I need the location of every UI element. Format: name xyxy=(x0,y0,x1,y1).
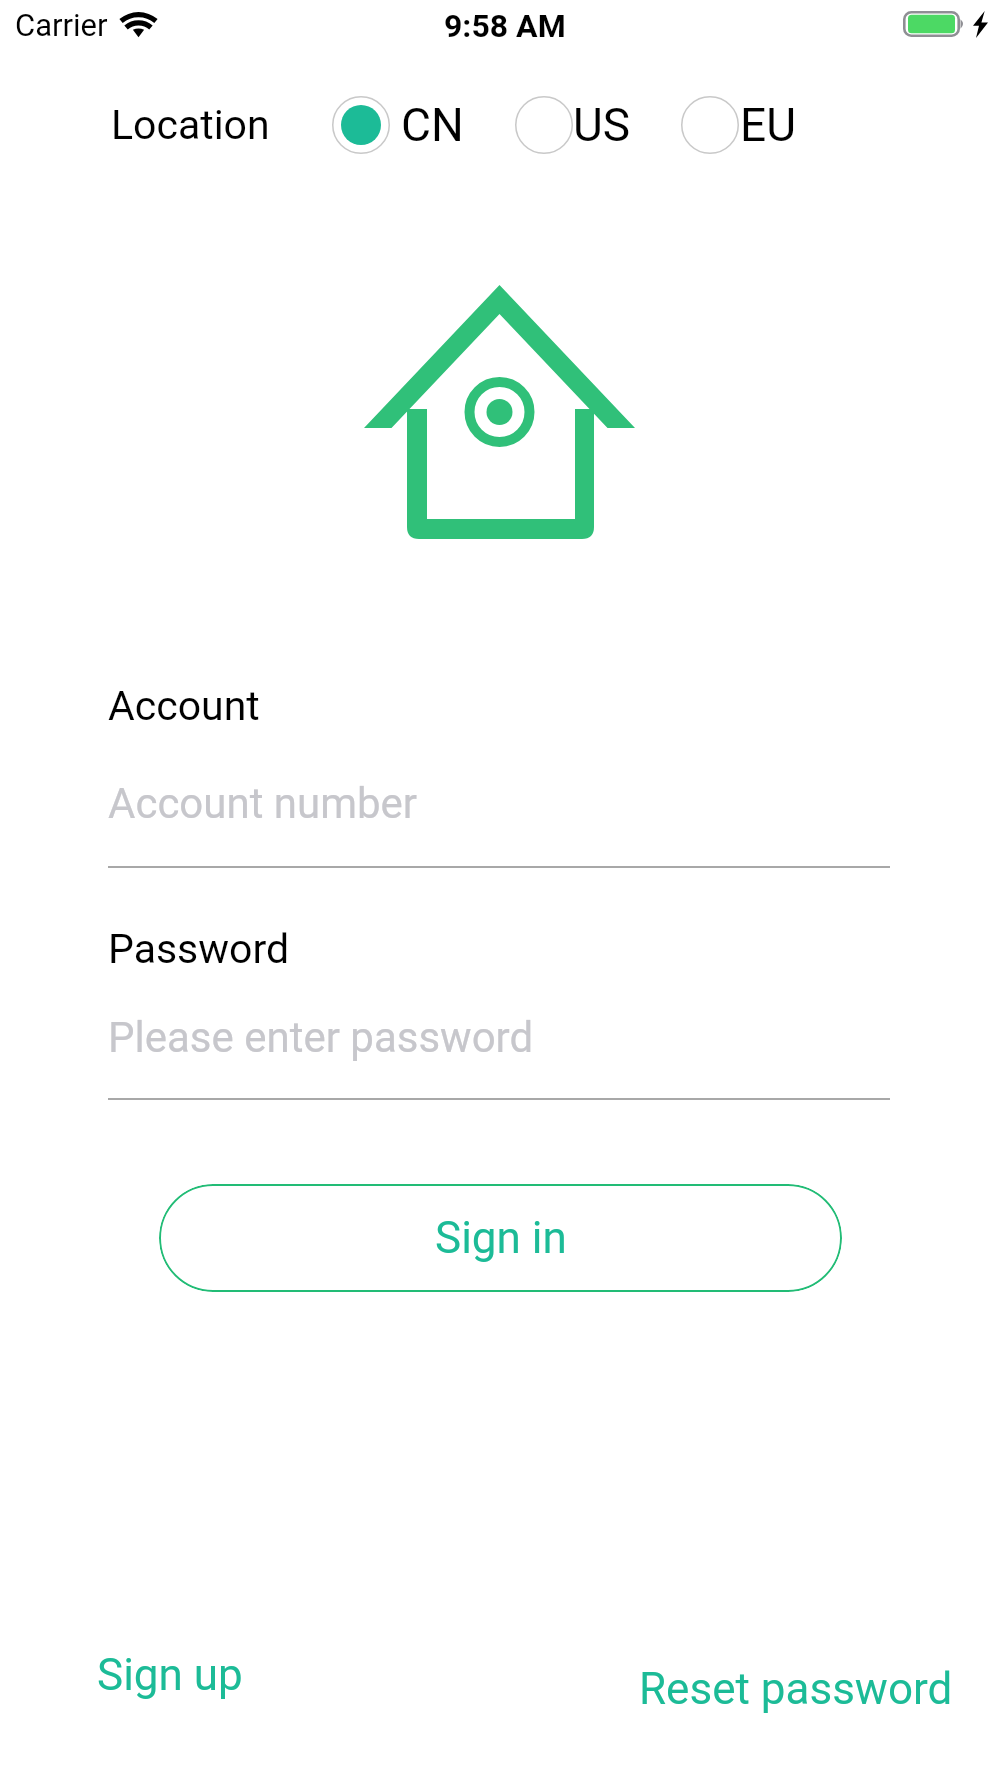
button[interactable]: Account xyxy=(108,682,890,868)
staticText: Location xyxy=(111,101,270,149)
other: Wi-Fi signal xyxy=(121,11,156,43)
staticText: Carrier xyxy=(15,7,108,43)
staticText: Please enter password xyxy=(108,1013,534,1062)
staticText: Account number xyxy=(108,779,418,828)
button[interactable]: Password xyxy=(108,925,890,1100)
staticText: 9:58 AM xyxy=(444,7,566,45)
button[interactable]: Sign in xyxy=(159,1184,842,1292)
staticText: Reset password xyxy=(639,1663,953,1715)
other: Charging xyxy=(973,11,988,38)
staticText: CN xyxy=(401,98,464,152)
button[interactable]: CN xyxy=(332,96,464,154)
other: Battery charging xyxy=(903,11,965,37)
button[interactable]: US xyxy=(515,96,631,154)
staticText: US xyxy=(573,98,631,152)
button[interactable]: Sign up xyxy=(97,1649,243,1701)
staticText: Sign in xyxy=(435,1212,567,1264)
staticText: Password xyxy=(108,925,290,973)
staticText: Account xyxy=(108,682,260,730)
button[interactable]: EU xyxy=(681,96,796,154)
button[interactable]: Reset password xyxy=(639,1663,953,1715)
staticText: EU xyxy=(740,98,796,152)
staticText: Sign up xyxy=(97,1649,243,1701)
